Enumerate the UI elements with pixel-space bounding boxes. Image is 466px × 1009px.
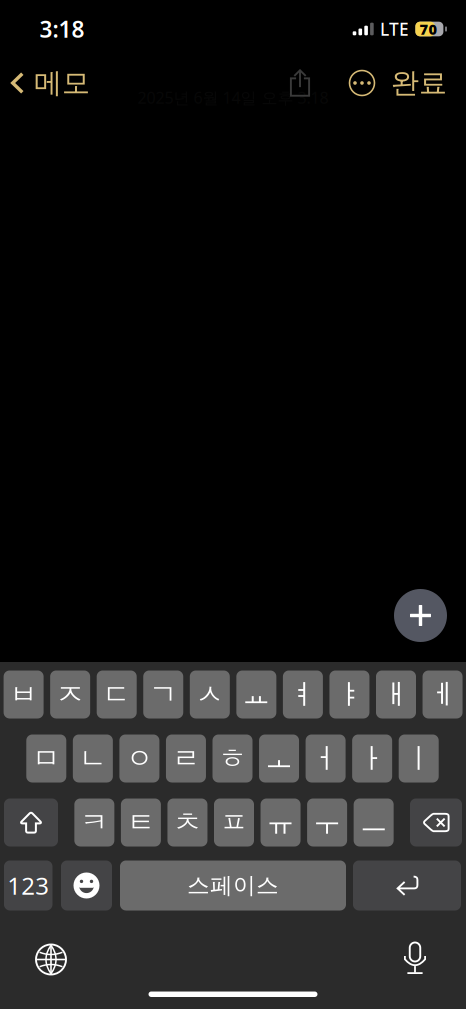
staticText: ㅋ (80, 805, 108, 840)
button[interactable]: ㅁ (26, 734, 66, 782)
button[interactable]: Share (278, 59, 322, 107)
staticText: ㅈ (56, 677, 84, 712)
staticText: 70 (419, 19, 437, 39)
button[interactable]: ㅠ (260, 798, 300, 846)
button[interactable]: ㅏ (352, 734, 392, 782)
staticText: 메모 (34, 66, 90, 100)
button[interactable] (353, 860, 461, 910)
staticText: ㅌ (127, 805, 155, 840)
staticText: ㅕ (289, 677, 317, 712)
button[interactable]: ㄴ (73, 734, 113, 782)
button[interactable]: ㅛ (236, 670, 276, 718)
button[interactable]: ㅜ (307, 798, 347, 846)
staticText: ㅊ (173, 805, 201, 840)
staticText: 2025년 6월 14일 오후 3:18 (137, 87, 328, 108)
button[interactable]: ㅣ (399, 734, 439, 782)
staticText: ㅐ (382, 677, 410, 712)
button[interactable]: ㅇ (119, 734, 159, 782)
button[interactable] (61, 860, 112, 910)
button[interactable]: ㅊ (167, 798, 207, 846)
staticText: ㅛ (242, 677, 270, 712)
button[interactable]: More (344, 59, 380, 107)
button[interactable] (4, 798, 58, 846)
staticText: ㅓ (312, 741, 340, 776)
staticText: ㅎ (218, 741, 246, 776)
button[interactable]: ㅔ (423, 670, 463, 718)
button[interactable]: ㅋ (74, 798, 114, 846)
button[interactable]: ㅡ (354, 798, 394, 846)
button[interactable]: ㅓ (306, 734, 346, 782)
staticText: ㄹ (172, 741, 200, 776)
staticText: ㅁ (32, 741, 60, 776)
staticText: ㅔ (429, 677, 457, 712)
button[interactable]: ㄹ (166, 734, 206, 782)
button[interactable]: ㄱ (143, 670, 183, 718)
staticText: ㅗ (265, 741, 293, 776)
staticText: LTE (380, 17, 409, 40)
button[interactable]: ㅈ (50, 670, 90, 718)
button[interactable]: 스페이스 (120, 860, 346, 910)
staticText: ㅏ (358, 741, 386, 776)
button[interactable]: ㅅ (190, 670, 230, 718)
staticText: ㅜ (313, 805, 341, 840)
button[interactable]: ㅌ (121, 798, 161, 846)
button[interactable]: 완료 (391, 59, 466, 107)
staticText: ㅑ (335, 677, 363, 712)
staticText: 123 (7, 870, 49, 901)
button[interactable] (410, 798, 462, 846)
staticText: ㅍ (220, 805, 248, 840)
button[interactable]: 123 (4, 860, 52, 910)
button[interactable]: ㄷ (97, 670, 137, 718)
button[interactable]: ㅕ (283, 670, 323, 718)
staticText: ㅣ (405, 741, 433, 776)
staticText: ㅠ (266, 805, 294, 840)
staticText: ㄷ (103, 677, 131, 712)
button[interactable]: ㅂ (4, 670, 44, 718)
staticText: ㅡ (360, 805, 388, 840)
staticText: 3:18 (39, 14, 84, 44)
button[interactable]: ㅎ (212, 734, 252, 782)
staticText: ㄱ (149, 677, 177, 712)
button[interactable]: Next keyboard (29, 942, 73, 976)
button[interactable]: ㅗ (259, 734, 299, 782)
staticText: 완료 (391, 66, 447, 100)
button[interactable]: Add attachment (394, 589, 447, 642)
staticText: 스페이스 (187, 872, 279, 899)
staticText: ㄴ (79, 741, 107, 776)
staticText: ㅂ (10, 677, 38, 712)
button[interactable]: ㅍ (214, 798, 254, 846)
button[interactable]: ㅐ (376, 670, 416, 718)
button[interactable]: Dictate (393, 942, 437, 976)
staticText: ㅇ (125, 741, 153, 776)
button[interactable]: ㅑ (329, 670, 369, 718)
button[interactable]: 메모 (0, 59, 90, 107)
staticText: ㅅ (196, 677, 224, 712)
